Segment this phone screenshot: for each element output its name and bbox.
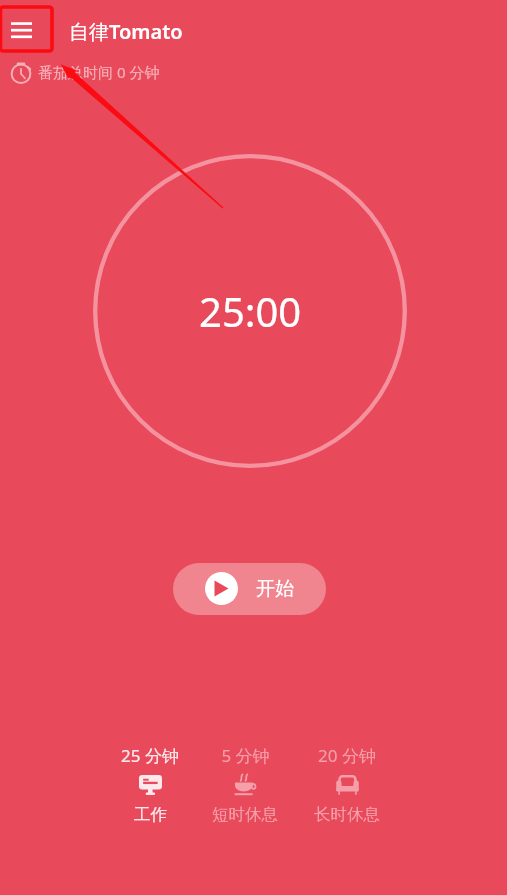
- staticText: 番茄总时间 0 分钟: [38, 62, 160, 82]
- button[interactable]: 25:00: [93, 154, 407, 468]
- button[interactable]: 开始: [173, 563, 326, 615]
- staticText: 长时休息: [314, 804, 380, 825]
- button[interactable]: 5 分钟: [195, 744, 295, 825]
- staticText: 自律Tomato: [69, 18, 183, 45]
- staticText: 25:00: [199, 284, 302, 338]
- button[interactable]: Open navigation drawer: [0, 8, 52, 52]
- staticText: 20 分钟: [318, 744, 376, 767]
- button[interactable]: 25 分钟: [100, 744, 200, 825]
- staticText: 工作: [134, 804, 167, 825]
- staticText: 5 分钟: [221, 744, 270, 767]
- staticText: 开始: [256, 577, 294, 601]
- button[interactable]: 20 分钟: [297, 744, 397, 825]
- staticText: 25 分钟: [121, 744, 179, 767]
- staticText: 短时休息: [212, 804, 278, 825]
